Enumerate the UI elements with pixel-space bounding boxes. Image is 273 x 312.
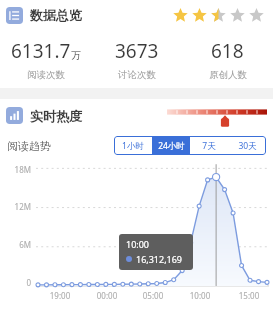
staticText: 10:00 [185,290,215,301]
staticText: 万 [71,49,81,62]
staticText: 24小时 [158,140,185,152]
staticText: 阅读次数 [27,69,65,81]
staticText: 10:00 [126,238,150,250]
staticText: 实时热度 [30,108,82,124]
staticText: 原创人数 [209,69,247,81]
button[interactable]: Data overview [6,7,23,24]
staticText: 16,312,169 [136,253,183,265]
button[interactable]: 3673 [91,30,182,88]
staticText: 讨论次数 [118,69,156,81]
staticText: 阅读趋势 [7,139,51,153]
staticText: 6M [0,239,31,250]
staticText: 12M [0,201,31,212]
staticText: 618 [211,38,244,64]
button[interactable]: Rating 2.5 of 5 [171,6,266,25]
staticText: 30天 [238,140,257,152]
button[interactable]: 24小时 [152,136,190,155]
staticText: 数据总览 [30,7,82,23]
staticText: 7天 [202,140,216,152]
staticText: 0 [0,277,31,288]
staticText: 05:00 [138,290,168,301]
button[interactable]: 7天 [190,136,228,155]
button[interactable]: 6131.7 [0,30,91,88]
button[interactable]: Heat level [167,105,267,127]
staticText: 00:00 [92,290,122,301]
staticText: 15:00 [234,290,264,301]
staticText: 6131.7 [11,38,71,64]
button[interactable]: 1小时 [114,136,152,155]
button[interactable]: Realtime heat [6,107,23,124]
staticText: 1小时 [122,140,144,152]
staticText: 19:00 [45,290,75,301]
staticText: 3673 [115,38,159,64]
button[interactable]: 618 [182,30,273,88]
button[interactable]: 30天 [228,136,266,155]
staticText: 18M [0,164,31,175]
